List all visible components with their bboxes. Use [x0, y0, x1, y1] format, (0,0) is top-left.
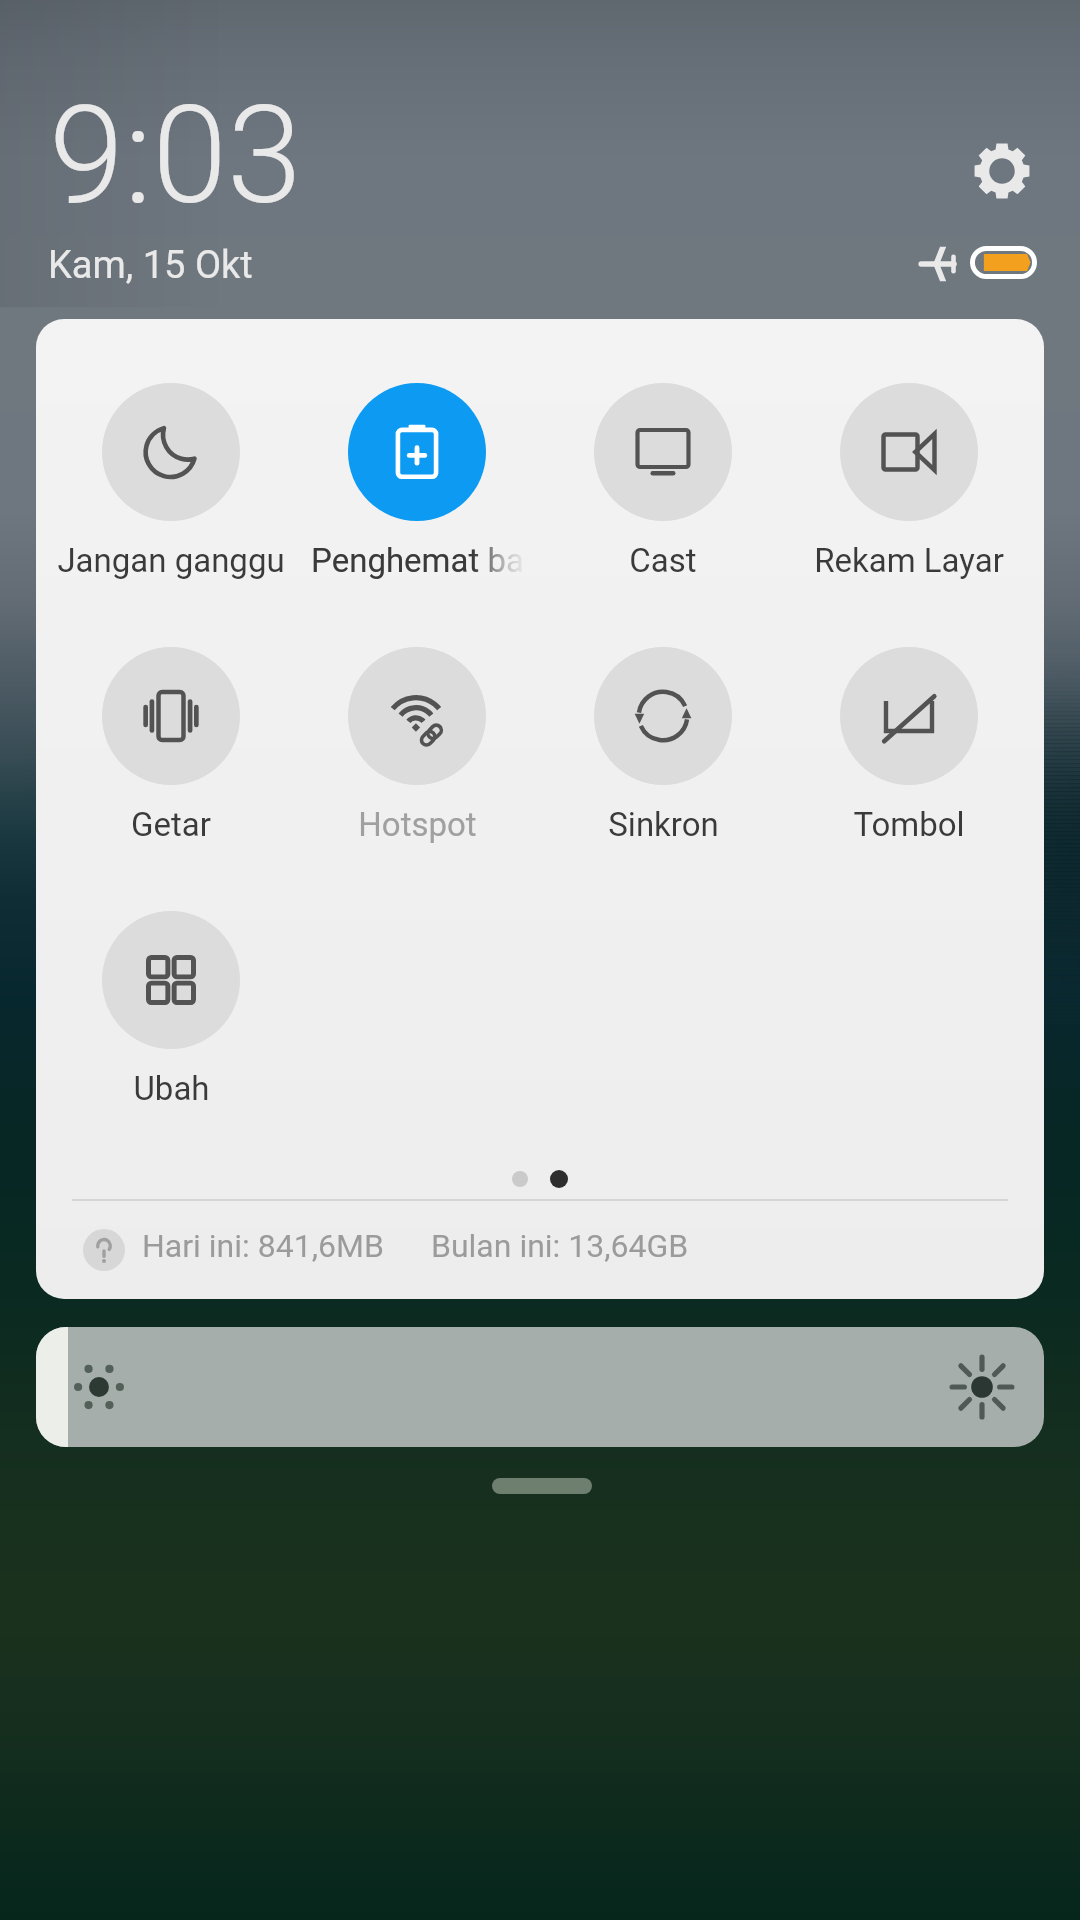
staticText: Sinkron — [608, 805, 719, 844]
staticText: Ubah — [133, 1069, 210, 1108]
button[interactable]: Cast — [540, 383, 786, 580]
button[interactable]: Hotspot — [294, 647, 540, 844]
staticText: Tombol — [853, 805, 965, 844]
staticText: Penghemat ba — [311, 541, 524, 580]
staticText: Hari ini: 841,6MB — [142, 1227, 384, 1265]
staticText: 9:03 — [49, 77, 302, 235]
button[interactable]: Getar — [48, 647, 294, 844]
button[interactable]: Ubah — [48, 911, 294, 1108]
staticText: Hotspot — [358, 805, 477, 844]
button[interactable]: Brightness — [36, 1327, 1044, 1447]
button[interactable]: Jangan ganggu — [48, 383, 294, 580]
button[interactable]: Rekam Layar — [786, 383, 1032, 580]
staticText: Rekam Layar — [814, 541, 1004, 580]
staticText: Kam, 15 Okt — [48, 243, 253, 288]
button[interactable]: Tombol — [786, 647, 1032, 844]
staticText: Jangan ganggu — [57, 541, 285, 580]
button[interactable]: Sinkron — [540, 647, 786, 844]
button[interactable]: Penghemat ba — [294, 383, 540, 580]
staticText: Getar — [131, 805, 211, 844]
staticText: Bulan ini: 13,64GB — [431, 1227, 689, 1265]
button[interactable]: Settings — [958, 127, 1046, 215]
staticText: Cast — [629, 541, 697, 580]
